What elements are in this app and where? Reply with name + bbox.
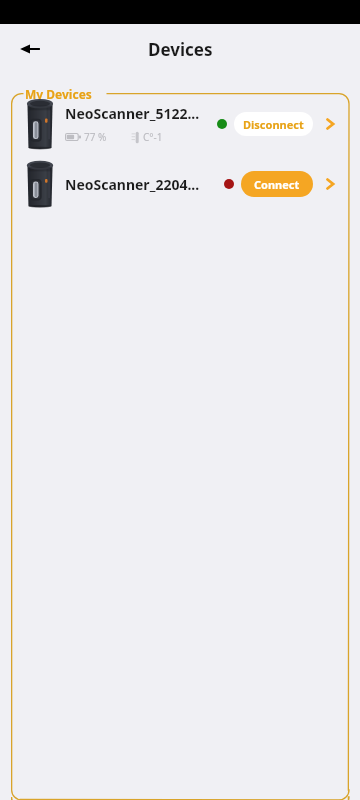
staticText: NeoScanner_2204...	[65, 175, 200, 194]
button[interactable]: Disconnect	[234, 112, 313, 136]
staticText: My Devices	[25, 86, 92, 102]
staticText: Connect	[254, 177, 300, 192]
button[interactable]: NeoScanner_2204...	[11, 155, 349, 213]
button[interactable]: Open device details	[317, 171, 343, 197]
button[interactable]: NeoScanner_5122...	[11, 93, 349, 155]
staticText: Disconnect	[243, 117, 304, 132]
button[interactable]: Back	[8, 27, 52, 71]
staticText: Devices	[148, 38, 213, 61]
staticText: NeoScanner_5122...	[65, 104, 200, 123]
button[interactable]: Connect	[241, 171, 313, 197]
staticText: 77 %	[84, 130, 107, 144]
staticText: C°-1	[143, 130, 163, 144]
button[interactable]: Open device details	[317, 111, 343, 137]
